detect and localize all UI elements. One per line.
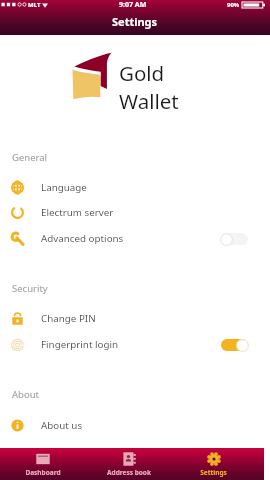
button[interactable]: Advanced options	[0, 226, 264, 251]
staticText: Electrum server	[41, 206, 114, 219]
staticText: Dashboard	[25, 468, 61, 477]
staticText: Address book	[107, 468, 151, 477]
staticText: Security	[12, 282, 48, 295]
staticText: Fingerprint login	[41, 338, 119, 351]
staticText: MLT	[28, 1, 41, 9]
staticText: Gold	[119, 59, 165, 87]
button[interactable]: Address book	[86, 448, 171, 480]
staticText: Wallet	[119, 87, 179, 115]
staticText: Language	[41, 181, 87, 194]
staticText: Advanced options	[41, 232, 124, 245]
button[interactable]: Electrum server	[0, 200, 264, 225]
staticText: 90%	[227, 1, 240, 9]
button[interactable]: Switch off	[220, 232, 249, 246]
button[interactable]: Change PIN	[0, 306, 264, 331]
button[interactable]: About us	[0, 413, 264, 438]
staticText: About us	[41, 419, 83, 432]
staticText: General	[12, 151, 48, 164]
button[interactable]: Dashboard	[0, 448, 86, 480]
button[interactable]: Fingerprint login	[0, 332, 264, 357]
staticText: 9:07 AM	[119, 0, 147, 9]
button[interactable]: Settings	[171, 448, 256, 480]
staticText: Settings	[200, 468, 227, 477]
staticText: Settings	[112, 14, 158, 29]
staticText: Change PIN	[41, 312, 96, 325]
button[interactable]: Switch on	[220, 338, 249, 352]
staticText: About	[12, 388, 39, 401]
button[interactable]: Language	[0, 175, 264, 200]
